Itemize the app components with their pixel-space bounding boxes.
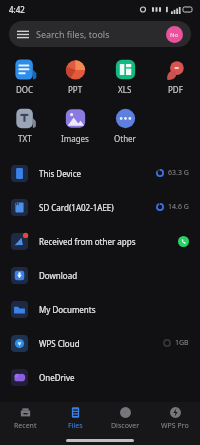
button[interactable]: My Documents: [0, 292, 200, 326]
staticText: XLS: [118, 84, 132, 95]
staticText: This Device: [39, 168, 82, 179]
button[interactable]: Other: [100, 105, 150, 146]
staticText: 1GB: [175, 338, 189, 348]
staticText: Files: [68, 421, 83, 431]
button[interactable]: This Device: [0, 156, 200, 190]
button[interactable]: Discover: [100, 402, 150, 435]
staticText: SD Card(1A02-1AEE): [39, 202, 114, 213]
staticText: My Documents: [39, 304, 96, 315]
staticText: TXT: [18, 133, 32, 144]
button[interactable]: PPT: [50, 56, 100, 97]
staticText: No: [170, 31, 179, 39]
button[interactable]: WPS Pro: [150, 402, 200, 435]
staticText: Other: [114, 133, 136, 144]
staticText: Search files, tools: [36, 28, 110, 40]
staticText: Download: [39, 270, 78, 281]
staticText: Received from other apps: [39, 236, 136, 247]
button[interactable]: Received from other apps: [0, 224, 200, 258]
button[interactable]: WPS Cloud: [0, 326, 200, 360]
button[interactable]: Images: [50, 105, 100, 146]
button[interactable]: Menu: [9, 21, 191, 47]
staticText: WPS Cloud: [39, 338, 80, 349]
staticText: DOC: [16, 84, 34, 95]
staticText: 14.6 G: [168, 202, 189, 212]
staticText: 63.3 G: [168, 168, 189, 178]
staticText: Recent: [14, 421, 37, 431]
button[interactable]: Account: [166, 26, 183, 43]
button[interactable]: Download: [0, 258, 200, 292]
staticText: Images: [61, 133, 89, 144]
button[interactable]: DOC: [0, 56, 50, 97]
button[interactable]: OneDrive: [0, 360, 200, 394]
staticText: PDF: [168, 84, 183, 95]
button[interactable]: Files: [50, 402, 100, 435]
button[interactable]: SD Card(1A02-1AEE): [0, 190, 200, 224]
staticText: OneDrive: [39, 372, 75, 383]
button[interactable]: PDF: [150, 56, 200, 97]
staticText: PPT: [68, 84, 83, 95]
staticText: WPS Pro: [161, 421, 189, 431]
other: Menu: [17, 28, 29, 40]
staticText: Discover: [111, 421, 140, 431]
button[interactable]: XLS: [100, 56, 150, 97]
button[interactable]: Recent: [0, 402, 50, 435]
staticText: 4:42: [9, 4, 25, 15]
button[interactable]: TXT: [0, 105, 50, 146]
